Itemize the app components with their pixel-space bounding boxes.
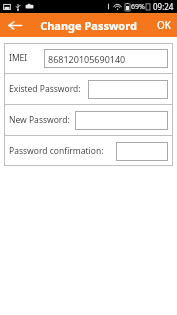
button[interactable]: Back — [0, 13, 30, 37]
button[interactable]: OK — [157, 13, 171, 37]
button[interactable]: New Password: — [4, 105, 173, 135]
staticText: Change Password — [40, 18, 137, 33]
button[interactable]: Existed Password: — [4, 74, 173, 104]
staticText: 69% — [131, 2, 145, 12]
staticText: 868120105690140 — [48, 53, 126, 65]
staticText: New Password: — [9, 114, 70, 126]
staticText: 09:24 — [153, 1, 174, 12]
button[interactable]: IMEI NO: — [4, 43, 173, 73]
staticText: Password confirmation: — [9, 145, 104, 157]
staticText: IMEI NO: — [9, 52, 44, 64]
button[interactable]: Password confirmation: — [4, 136, 173, 166]
staticText: Existed Password: — [9, 83, 81, 95]
staticText: OK — [157, 18, 171, 32]
